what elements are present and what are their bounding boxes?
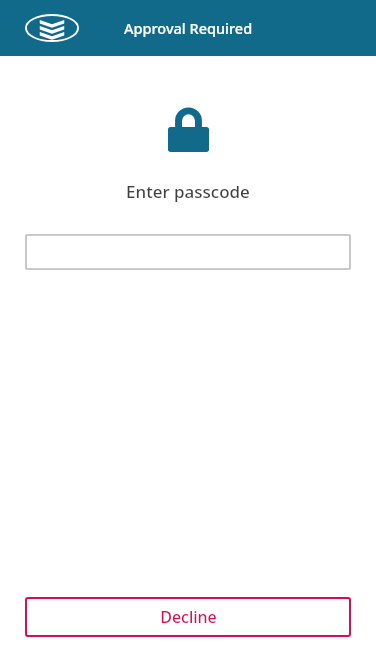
staticText: Approval Required [124, 18, 253, 38]
staticText: Decline [160, 606, 217, 628]
button[interactable]: Decline [25, 597, 351, 637]
staticText: Enter passcode [126, 180, 250, 203]
button[interactable]: Passcode input field [25, 234, 351, 270]
button[interactable]: Logo [25, 14, 79, 42]
